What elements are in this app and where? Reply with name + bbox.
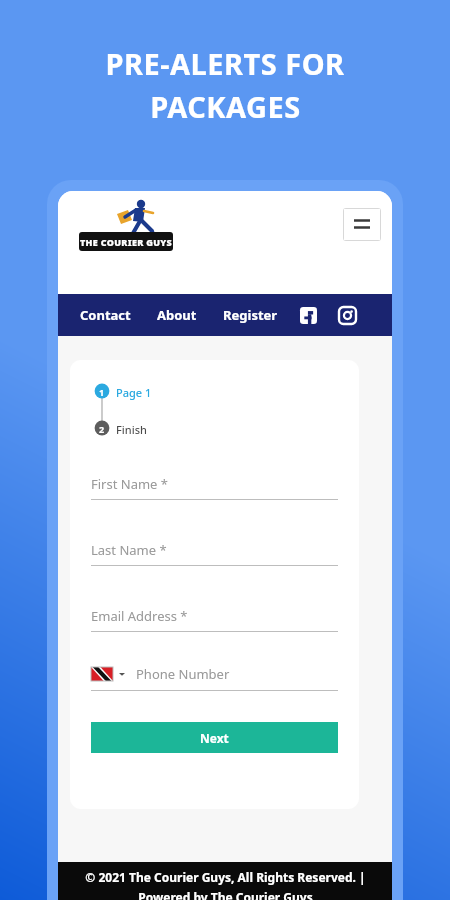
staticText: © 2021 The Courier Guys, All Rights Rese…: [85, 869, 366, 885]
button[interactable]: Menu: [343, 208, 381, 241]
staticText: Powered by The Courier Guys: [138, 889, 313, 900]
button[interactable]: First Name *: [91, 475, 338, 500]
staticText: PRE-ALERTS FOR: [105, 44, 345, 83]
staticText: Next: [200, 730, 229, 746]
staticText: 1: [99, 386, 105, 398]
button[interactable]: Contact: [78, 302, 133, 328]
button[interactable]: Phone Number: [91, 665, 338, 691]
button[interactable]: THE COURIER GUYS: [79, 196, 175, 252]
button[interactable]: Register: [221, 302, 280, 328]
staticText: THE COURIER GUYS: [80, 236, 173, 248]
button[interactable]: Finish: [116, 422, 147, 437]
staticText: First Name *: [91, 475, 168, 493]
staticText: Contact: [80, 306, 131, 324]
button[interactable]: Email Address *: [91, 607, 338, 632]
staticText: PACKAGES: [150, 87, 301, 126]
staticText: About: [157, 306, 197, 324]
button[interactable]: Instagram: [339, 307, 356, 324]
staticText: Last Name *: [91, 541, 167, 559]
button[interactable]: Next: [91, 722, 338, 753]
staticText: Email Address *: [91, 607, 188, 625]
button[interactable]: Last Name *: [91, 541, 338, 566]
button[interactable]: Page 1: [116, 385, 152, 400]
button[interactable]: About: [155, 302, 199, 328]
staticText: Phone Number: [136, 665, 230, 683]
staticText: Page 1: [116, 385, 152, 400]
staticText: 2: [99, 423, 105, 435]
button[interactable]: Facebook: [300, 307, 317, 324]
staticText: Register: [223, 306, 278, 324]
staticText: Finish: [116, 422, 147, 437]
